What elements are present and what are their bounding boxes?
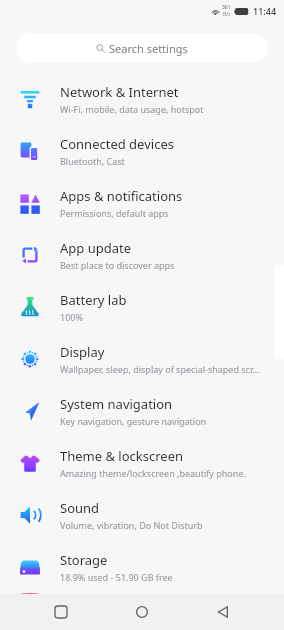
button[interactable]: Security & location <box>0 593 284 594</box>
button[interactable]: Back <box>203 594 243 630</box>
staticText: 100% <box>60 311 83 323</box>
staticText: Storage <box>60 551 108 569</box>
button[interactable]: Display <box>0 333 284 385</box>
button[interactable]: Battery lab <box>0 281 284 333</box>
staticText: 11:44 <box>253 5 277 17</box>
staticText: Search settings <box>109 41 188 56</box>
button[interactable]: Connected devices <box>0 125 284 177</box>
button[interactable]: Storage <box>0 541 284 593</box>
staticText: Display <box>60 343 105 361</box>
button[interactable]: Apps & notifications <box>0 177 284 229</box>
button[interactable]: Recent apps <box>41 594 81 630</box>
button[interactable]: Search settings <box>16 33 268 63</box>
staticText: App update <box>60 239 132 257</box>
staticText: Wi-Fi, mobile, data usage, hotspot <box>60 103 204 115</box>
button[interactable]: Theme & lockscreen <box>0 437 284 489</box>
staticText: Network & Internet <box>60 83 179 101</box>
staticText: 18.9% used - 51.90 GB free <box>60 571 173 583</box>
staticText: Best place to discover apps <box>60 259 175 271</box>
staticText: Bluetooth, Cast <box>60 155 125 167</box>
staticText: B/s <box>223 11 231 18</box>
staticText: Theme & lockscreen <box>60 447 184 465</box>
staticText: System navigation <box>60 395 173 413</box>
staticText: Permissions, default apps <box>60 207 169 219</box>
staticText: Connected devices <box>60 135 174 153</box>
button[interactable]: Home <box>122 594 162 630</box>
staticText: Battery lab <box>60 291 127 309</box>
staticText: Key navigation, gesture navigation <box>60 415 207 427</box>
staticText: Amazing theme/lockscreen ,beautify phone… <box>60 467 246 479</box>
staticText: 361 <box>222 4 231 11</box>
button[interactable]: System navigation <box>0 385 284 437</box>
button[interactable]: Network & Internet <box>0 73 284 125</box>
staticText: Volume, vibration, Do Not Disturb <box>60 519 203 531</box>
staticText: Sound <box>60 499 100 517</box>
staticText: Apps & notifications <box>60 187 183 205</box>
staticText: Wallpaper, sleep, display of special-sha… <box>60 363 260 375</box>
button[interactable]: App update <box>0 229 284 281</box>
button[interactable]: Sound <box>0 489 284 541</box>
